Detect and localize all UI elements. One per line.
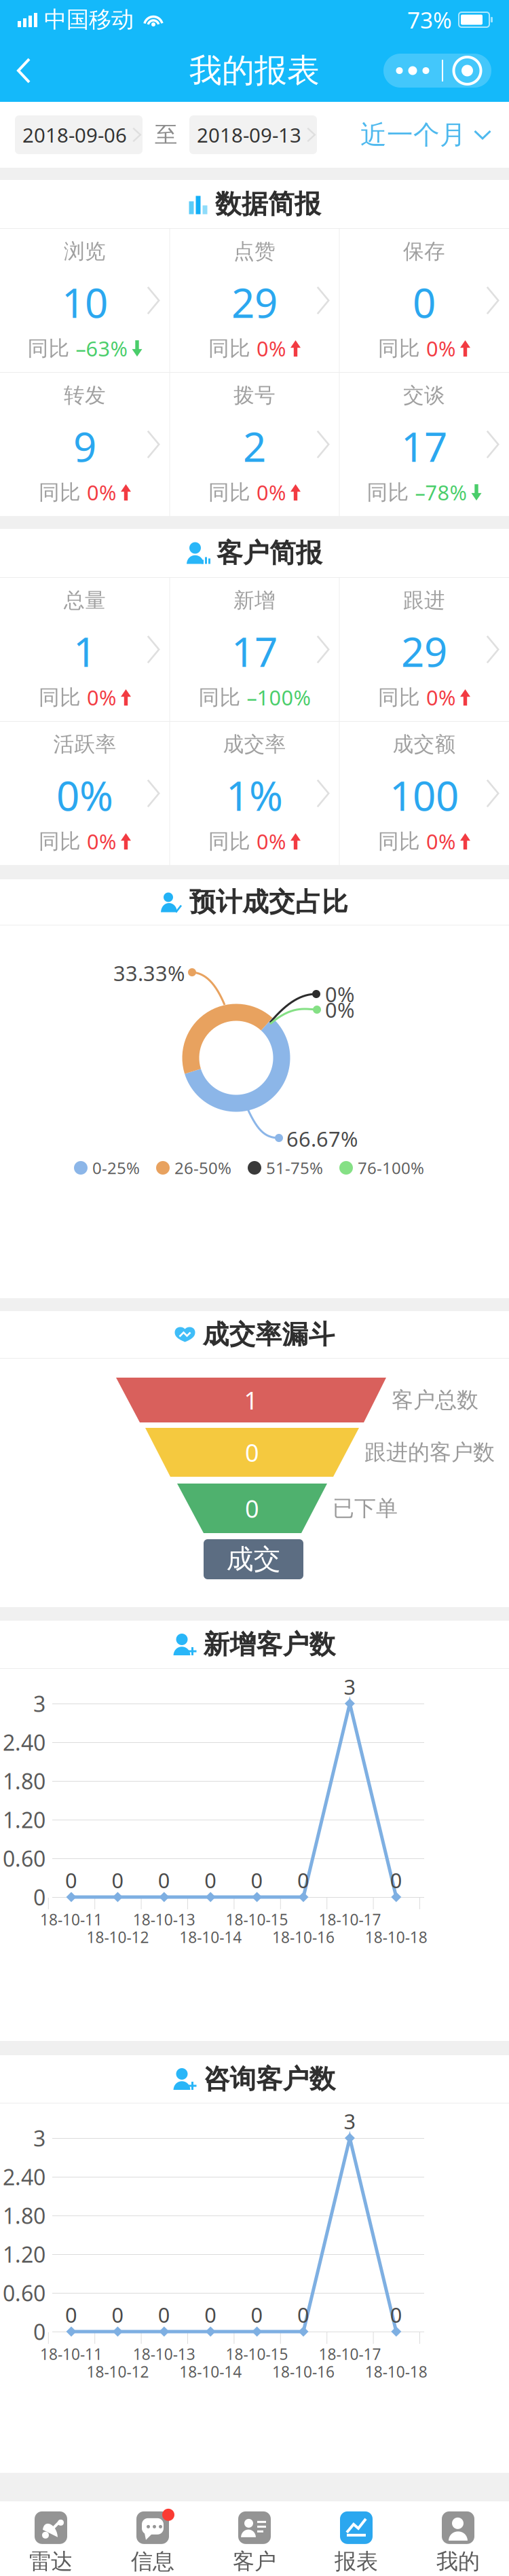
button[interactable]: 转发 — [0, 373, 169, 516]
staticText: –100% — [247, 684, 310, 711]
staticText: 0 — [245, 1436, 259, 1469]
staticText: 0 — [158, 1866, 170, 1894]
staticText: 66.67% — [286, 1125, 358, 1152]
staticText: 18-10-11 — [40, 1909, 102, 1930]
button[interactable]: 拨号 — [170, 373, 339, 516]
staticText: 0 — [65, 2301, 77, 2328]
staticText: 数据简报 — [215, 188, 321, 220]
staticText: 2.40 — [3, 1728, 45, 1757]
staticText: 0% — [257, 828, 286, 855]
button[interactable]: 点赞 — [170, 229, 339, 372]
staticText: 9 — [73, 419, 96, 473]
button[interactable]: 新增 — [170, 578, 339, 721]
button[interactable]: Back — [0, 49, 48, 92]
staticText: 18-10-14 — [179, 2361, 242, 2382]
staticText: 0% — [257, 479, 286, 506]
staticText: 76-100% — [358, 1157, 424, 1179]
staticText: 18-10-15 — [226, 1909, 288, 1930]
staticText: 0 — [390, 1866, 402, 1894]
button[interactable]: 总量 — [0, 578, 169, 721]
button[interactable]: 我的 — [407, 2501, 509, 2576]
staticText: 0 — [251, 2301, 263, 2328]
button[interactable]: 雷达 — [0, 2501, 102, 2576]
staticText: 0 — [112, 2301, 124, 2328]
staticText: 3 — [344, 2107, 356, 2135]
staticText: 1% — [226, 768, 283, 822]
staticText: 0 — [33, 1883, 45, 1911]
staticText: 1 — [244, 1384, 258, 1416]
staticText: 我的报表 — [189, 51, 320, 91]
staticText: 18-10-11 — [40, 2344, 102, 2364]
button[interactable]: 客户 — [204, 2501, 305, 2576]
staticText: 2.40 — [3, 2162, 45, 2191]
staticText: 18-10-12 — [86, 2361, 149, 2382]
staticText: 成交率 — [223, 732, 286, 757]
staticText: 18-10-13 — [133, 2344, 195, 2364]
staticText: 29 — [231, 275, 278, 329]
staticText: 0% — [325, 996, 354, 1023]
staticText: 活跃率 — [53, 732, 116, 757]
staticText: 29 — [401, 624, 447, 678]
button[interactable]: 跟进 — [340, 578, 509, 721]
staticText: 成交额 — [393, 732, 456, 757]
button[interactable]: 成交率 — [170, 722, 339, 865]
button[interactable]: 报表 — [305, 2501, 407, 2576]
staticText: 18-10-18 — [365, 1927, 427, 1947]
staticText: 0 — [413, 275, 436, 329]
staticText: 我的 — [436, 2548, 480, 2575]
staticText: 0 — [158, 2301, 170, 2328]
staticText: 18-10-18 — [365, 2361, 427, 2382]
staticText: 18-10-16 — [272, 1927, 335, 1947]
button[interactable]: 2018-09-13 — [189, 115, 317, 154]
staticText: 1.20 — [3, 1805, 45, 1834]
staticText: 近一个月 — [360, 119, 466, 151]
button[interactable]: 2018-09-06 — [15, 115, 143, 154]
staticText: 0.60 — [3, 2278, 45, 2307]
button[interactable]: 成交额 — [340, 722, 509, 865]
staticText: 同比 — [208, 480, 250, 505]
button[interactable]: 交谈 — [340, 373, 509, 516]
staticText: 0 — [245, 1492, 259, 1525]
button[interactable]: 浏览 — [0, 229, 169, 372]
button[interactable]: 保存 — [340, 229, 509, 372]
staticText: –63% — [76, 335, 127, 362]
staticText: 17 — [231, 624, 278, 678]
staticText: 1.80 — [3, 2201, 45, 2230]
staticText: 0% — [257, 335, 286, 362]
staticText: 18-10-17 — [319, 2344, 381, 2364]
button[interactable]: 近一个月 — [360, 114, 491, 155]
staticText: 报表 — [335, 2548, 378, 2575]
staticText: 2018-09-13 — [197, 122, 301, 148]
staticText: 73% — [407, 5, 452, 35]
staticText: 同比 — [378, 829, 420, 854]
button[interactable]: 信息 — [102, 2501, 204, 2576]
staticText: 0 — [297, 2301, 309, 2328]
button[interactable]: More — [383, 54, 491, 88]
staticText: 0% — [426, 684, 455, 711]
staticText: 0-25% — [92, 1157, 140, 1179]
staticText: 新增客户数 — [203, 1628, 336, 1661]
staticText: 0 — [204, 2301, 217, 2328]
button[interactable]: 活跃率 — [0, 722, 169, 865]
staticText: 3 — [33, 1689, 45, 1718]
staticText: 浏览 — [64, 239, 106, 264]
staticText: 18-10-14 — [179, 1927, 242, 1947]
staticText: 同比 — [208, 829, 250, 854]
staticText: 雷达 — [29, 2548, 73, 2575]
staticText: 同比 — [199, 685, 241, 710]
staticText: 总量 — [64, 588, 106, 613]
staticText: 转发 — [64, 383, 106, 408]
staticText: 点赞 — [233, 239, 276, 264]
staticText: 至 — [155, 121, 177, 149]
staticText: 成交 — [226, 1543, 281, 1576]
staticText: 中国移动 — [44, 6, 134, 34]
staticText: 1.80 — [3, 1767, 45, 1795]
staticText: 信息 — [131, 2548, 174, 2575]
staticText: 0 — [390, 2301, 402, 2328]
staticText: 同比 — [378, 336, 420, 361]
staticText: 0 — [251, 1866, 263, 1894]
staticText: 已下单 — [333, 1495, 398, 1522]
staticText: 10 — [62, 275, 108, 329]
staticText: 2018-09-06 — [22, 122, 127, 148]
staticText: 客户 — [233, 2548, 276, 2575]
